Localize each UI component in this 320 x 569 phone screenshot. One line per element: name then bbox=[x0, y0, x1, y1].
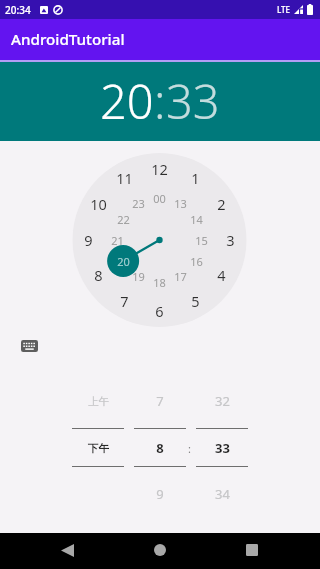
button[interactable]: 33 bbox=[166, 69, 220, 133]
staticText: 6 bbox=[155, 301, 164, 321]
staticText: AndroidTutorial bbox=[11, 29, 125, 50]
staticText: 22 bbox=[117, 212, 130, 227]
button[interactable]: 23 bbox=[122, 192, 154, 214]
staticText: 7 bbox=[156, 392, 164, 410]
button[interactable]: Back bbox=[43, 532, 91, 568]
staticText: 11 bbox=[116, 168, 133, 188]
staticText: 34 bbox=[215, 485, 230, 503]
staticText: 33 bbox=[215, 439, 230, 457]
button[interactable]: 8 bbox=[82, 264, 114, 286]
button[interactable]: 19 bbox=[122, 265, 154, 287]
button[interactable]: 00 bbox=[143, 187, 175, 209]
button[interactable]: Switch to keyboard input bbox=[14, 334, 44, 358]
button[interactable]: 17 bbox=[164, 265, 196, 287]
staticText: 17 bbox=[174, 269, 187, 284]
button[interactable]: 10 bbox=[82, 193, 114, 215]
button[interactable] bbox=[190, 379, 254, 516]
button[interactable]: 20 bbox=[107, 250, 139, 272]
staticText: 2 bbox=[217, 194, 226, 214]
button[interactable]: 11 bbox=[108, 167, 140, 189]
staticText: 16 bbox=[190, 254, 203, 269]
button[interactable]: 13 bbox=[164, 192, 196, 214]
staticText: 10 bbox=[90, 194, 107, 214]
staticText: 9 bbox=[156, 485, 164, 503]
button[interactable]: 4 bbox=[205, 264, 237, 286]
staticText: 13 bbox=[174, 196, 187, 211]
staticText: 1 bbox=[191, 168, 200, 188]
staticText: : bbox=[154, 69, 166, 133]
button[interactable]: 9 bbox=[72, 229, 104, 251]
button[interactable]: 22 bbox=[107, 208, 139, 230]
button[interactable]: 15 bbox=[185, 229, 217, 251]
staticText: 20:34 bbox=[5, 3, 31, 17]
button[interactable]: 3 bbox=[214, 229, 246, 251]
button[interactable]: Home bbox=[136, 532, 184, 568]
button[interactable]: 18 bbox=[143, 271, 175, 293]
staticText: 12 bbox=[151, 159, 168, 179]
staticText: 7 bbox=[120, 291, 129, 311]
button[interactable] bbox=[128, 379, 192, 516]
staticText: 8 bbox=[94, 265, 103, 285]
staticText: 下午 bbox=[88, 442, 109, 455]
button[interactable]: 12 bbox=[143, 158, 175, 180]
staticText: LTE bbox=[277, 4, 291, 15]
staticText: 19 bbox=[132, 269, 145, 284]
staticText: 5 bbox=[191, 291, 200, 311]
button[interactable]: 7 bbox=[108, 290, 140, 312]
staticText: 20 bbox=[117, 254, 130, 269]
staticText: 8 bbox=[156, 439, 164, 457]
button[interactable]: 20 bbox=[100, 69, 154, 133]
button[interactable]: 6 bbox=[143, 300, 175, 322]
button[interactable]: 2 bbox=[205, 193, 237, 215]
staticText: 3 bbox=[226, 230, 235, 250]
staticText: 32 bbox=[215, 392, 230, 410]
button[interactable]: 1 bbox=[179, 167, 211, 189]
staticText: 上午 bbox=[88, 395, 109, 408]
button[interactable]: Recent apps bbox=[228, 532, 276, 568]
staticText: 23 bbox=[132, 196, 145, 211]
button[interactable] bbox=[66, 379, 130, 516]
staticText: 15 bbox=[195, 233, 208, 248]
staticText: : bbox=[188, 441, 191, 456]
staticText: 9 bbox=[84, 230, 93, 250]
staticText: 4 bbox=[217, 265, 226, 285]
staticText: 00 bbox=[153, 191, 166, 206]
button[interactable]: 14 bbox=[180, 208, 212, 230]
button[interactable]: 21 bbox=[101, 229, 133, 251]
button[interactable]: 5 bbox=[179, 290, 211, 312]
staticText: 14 bbox=[190, 212, 203, 227]
staticText: 18 bbox=[153, 275, 166, 290]
staticText: 21 bbox=[111, 233, 124, 248]
button[interactable]: 16 bbox=[180, 250, 212, 272]
